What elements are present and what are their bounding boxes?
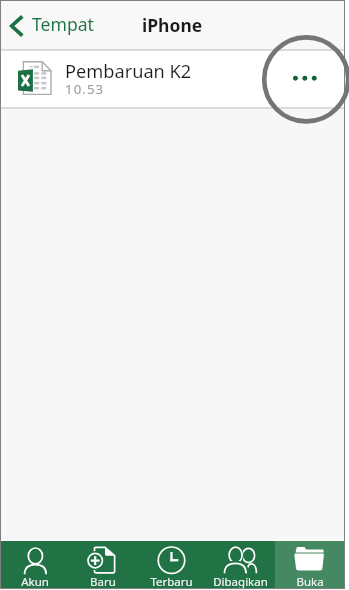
button[interactable]: Tempat [1, 1, 100, 49]
button[interactable]: Baru [69, 541, 137, 588]
staticText: Pembaruan K2 [65, 59, 192, 84]
button[interactable]: More options [276, 51, 344, 107]
staticText: Tempat [32, 12, 94, 36]
button[interactable]: Pembaruan K2 [1, 51, 344, 107]
staticText: Baru [90, 574, 116, 588]
staticText: Akun [21, 574, 49, 588]
button[interactable]: Akun [1, 541, 69, 588]
staticText: Buka [296, 574, 324, 588]
staticText: 10.53 [65, 80, 105, 98]
button[interactable]: Terbaru [137, 541, 206, 588]
staticText: Terbaru [150, 574, 193, 588]
button[interactable]: Buka [275, 541, 344, 588]
staticText: Dibagikan [213, 574, 268, 588]
staticText: iPhone [142, 13, 203, 37]
button[interactable]: Dibagikan [206, 541, 275, 588]
